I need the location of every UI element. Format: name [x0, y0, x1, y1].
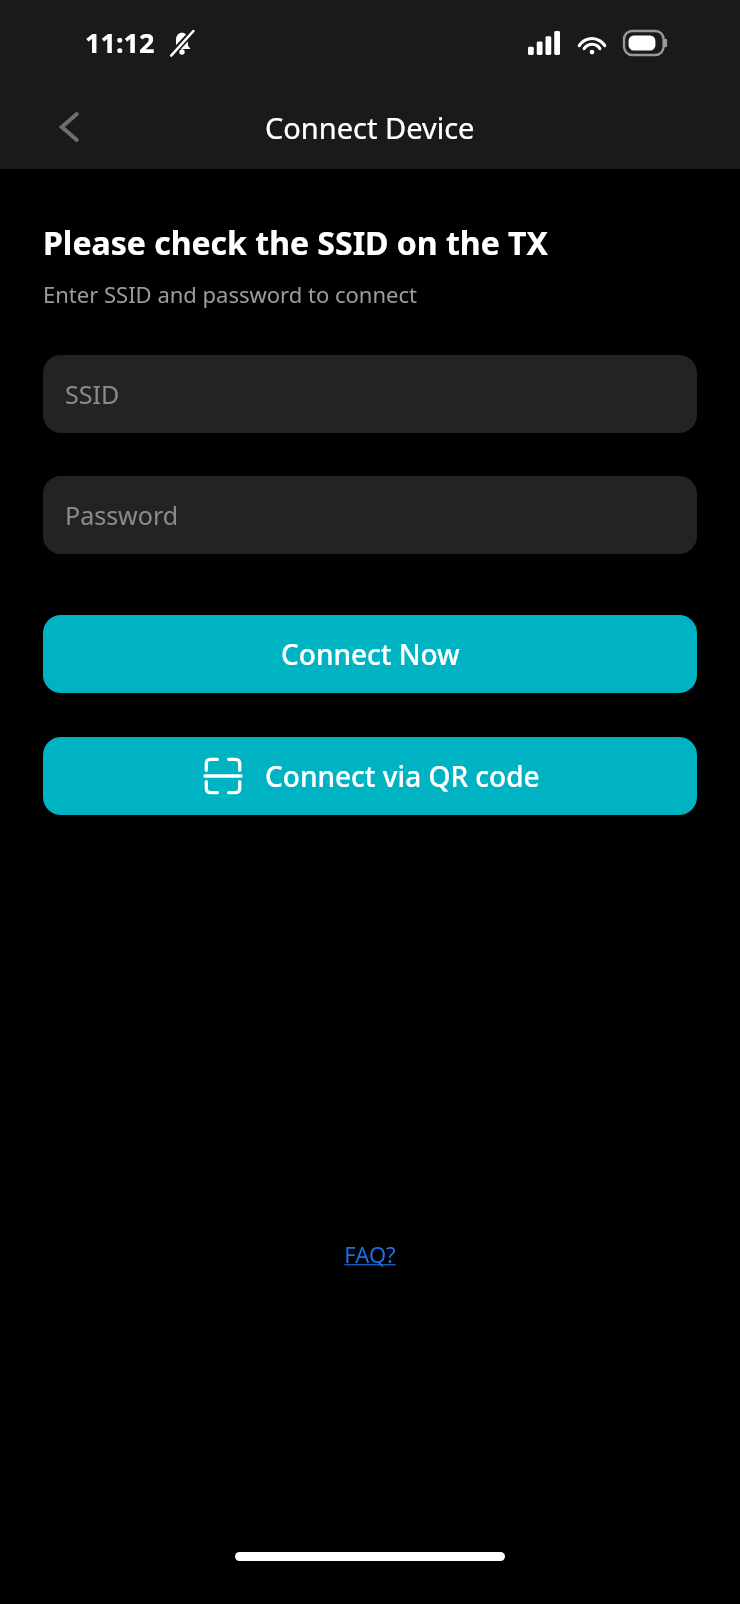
button[interactable]: Password: [43, 476, 697, 554]
button[interactable]: FAQ?: [344, 1239, 396, 1269]
staticText: Password: [65, 498, 179, 532]
staticText: FAQ?: [344, 1239, 396, 1269]
staticText: 11:12: [85, 24, 155, 61]
button[interactable]: SSID: [43, 355, 697, 433]
button[interactable]: Connect Now: [43, 615, 697, 693]
staticText: Please check the SSID on the TX: [43, 221, 548, 265]
staticText: SSID: [65, 377, 120, 411]
staticText: Connect via QR code: [265, 757, 540, 795]
button[interactable]: Connect via QR code: [43, 737, 697, 815]
button[interactable]: Back: [38, 95, 102, 159]
staticText: Connect Now: [281, 635, 460, 673]
staticText: Enter SSID and password to connect: [43, 279, 417, 309]
staticText: Connect Device: [265, 108, 475, 147]
